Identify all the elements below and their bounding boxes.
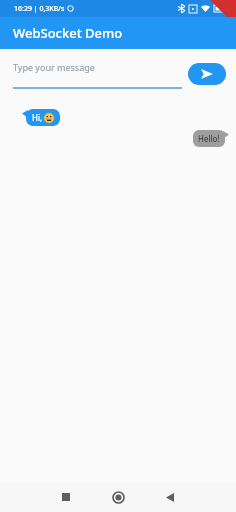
button[interactable]: Hi, bbox=[22, 109, 56, 126]
staticText: Hi, bbox=[32, 112, 43, 123]
staticText: 16:29 | 0,3KB/s bbox=[14, 4, 65, 14]
button[interactable]: Back bbox=[144, 482, 196, 512]
button[interactable]: Recents bbox=[40, 482, 92, 512]
button[interactable]: Type your message bbox=[13, 61, 182, 89]
button[interactable]: Send bbox=[188, 63, 226, 85]
button[interactable]: Hello! bbox=[197, 130, 229, 147]
button[interactable]: Home bbox=[92, 482, 144, 512]
staticText: WebSocket Demo bbox=[13, 24, 123, 42]
staticText: Hello! bbox=[198, 133, 220, 144]
staticText: Type your message bbox=[13, 61, 95, 73]
